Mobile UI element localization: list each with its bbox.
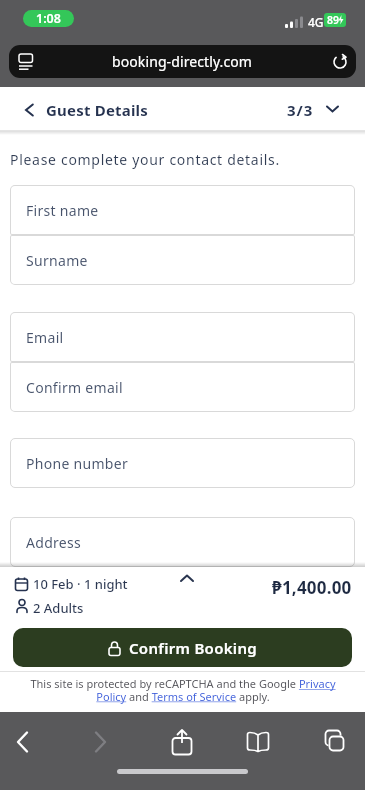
staticText: booking-directly.com (112, 52, 253, 71)
staticText: 89 (327, 13, 340, 27)
button[interactable]: Email (10, 312, 355, 362)
button[interactable]: Guest Details (46, 95, 206, 125)
staticText: 3/3 (287, 100, 314, 120)
staticText: Phone number (26, 454, 129, 473)
button[interactable]: Address (10, 517, 355, 567)
button[interactable] (9, 45, 356, 78)
staticText: Please complete your contact details. (10, 150, 280, 169)
button[interactable]: Phone number (10, 438, 355, 488)
staticText: 2 Adults (33, 599, 84, 617)
button[interactable] (16, 731, 29, 753)
staticText: Address (26, 533, 82, 552)
button[interactable]: Surname (10, 235, 355, 285)
button[interactable] (18, 53, 34, 70)
button[interactable] (322, 730, 345, 753)
staticText: First name (26, 201, 99, 220)
button[interactable]: This site is protected by reCAPTCHA and … (18, 676, 347, 706)
staticText: 1:08 (36, 10, 61, 27)
staticText: Confirm email (26, 378, 123, 397)
staticText: This site is protected by reCAPTCHA and … (30, 676, 336, 704)
button[interactable]: Confirm email (10, 362, 355, 412)
button[interactable] (332, 54, 348, 70)
staticText: Guest Details (46, 100, 149, 120)
button[interactable]: First name (10, 185, 355, 235)
staticText: Surname (26, 251, 88, 270)
button[interactable] (246, 732, 270, 752)
button[interactable] (325, 104, 340, 114)
staticText: ₱1,400.00 (272, 576, 352, 599)
button[interactable] (179, 573, 195, 583)
button[interactable] (171, 729, 193, 756)
staticText: Email (26, 328, 64, 347)
staticText: 10 Feb · 1 night (33, 575, 128, 593)
staticText: 4G (308, 14, 324, 30)
button[interactable]: Confirm Booking (13, 628, 352, 667)
staticText: Confirm Booking (129, 638, 257, 658)
button[interactable] (94, 731, 107, 753)
